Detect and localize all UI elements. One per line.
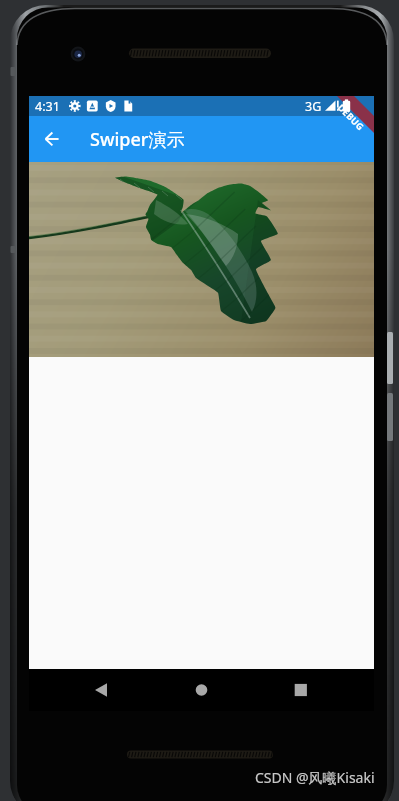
staticText: DEBUG (336, 101, 367, 133)
button[interactable]: Back (29, 669, 144, 711)
staticText: CSDN @风曦Kisaki (255, 768, 375, 787)
button[interactable]: Back (32, 119, 72, 159)
staticText: 4:31 (35, 98, 60, 115)
staticText: 3G (305, 98, 322, 115)
button[interactable]: Home (144, 669, 259, 711)
button[interactable]: Recents (259, 669, 374, 711)
staticText: Swiper演示 (90, 127, 185, 152)
